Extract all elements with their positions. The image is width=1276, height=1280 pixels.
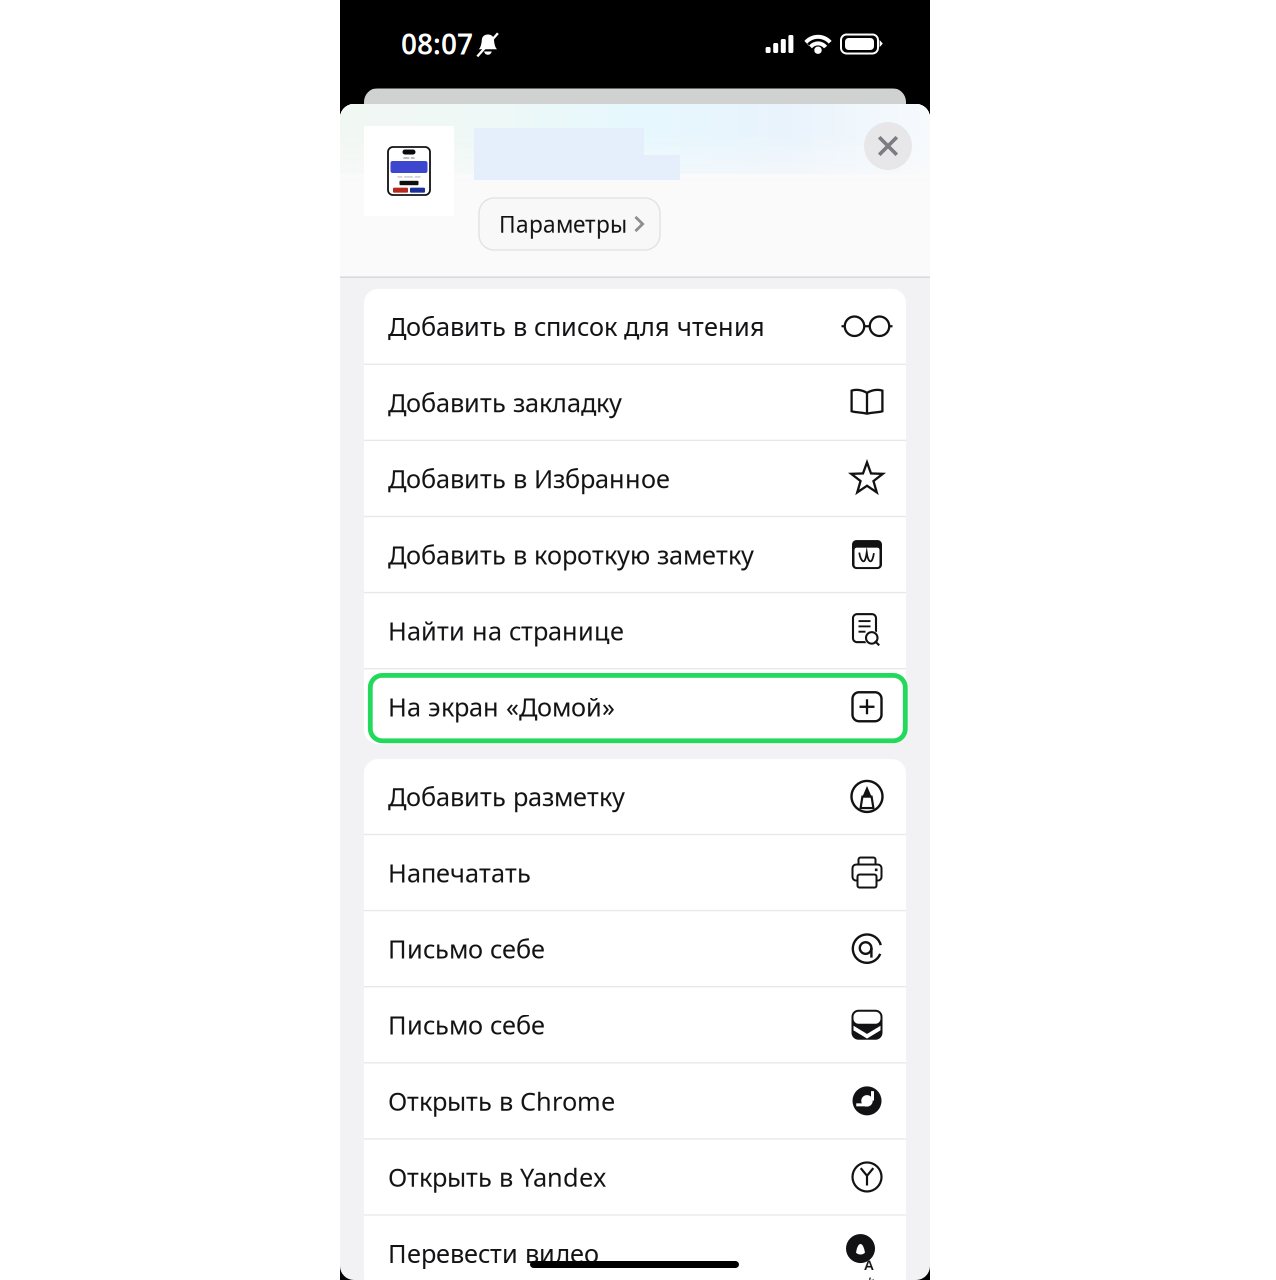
button[interactable]: Добавить закладку [364,365,906,440]
staticText: Добавить закладку [388,385,622,419]
staticText: Открыть в Yandex [388,1160,606,1194]
staticText: На экран «Домой» [388,690,615,723]
button[interactable]: Напечатать [364,835,906,910]
staticText: Письмо себе [388,932,545,965]
button[interactable]: Открыть в Chrome [364,1063,906,1138]
staticText: Добавить в Избранное [388,462,670,495]
button[interactable]: Добавить в короткую заметку [364,517,906,592]
staticText: Перевести видео [388,1236,599,1270]
staticText: Aあ [864,1255,879,1280]
button[interactable]: Перевести видео [364,1216,906,1280]
button[interactable]: Найти на странице [364,593,906,668]
staticText: 08:07 [401,25,473,62]
button[interactable]: Письмо себе [364,911,906,986]
button[interactable]: Закрыть [857,115,919,177]
staticText: Параметры [499,209,627,239]
staticText: Добавить разметку [388,780,625,813]
button[interactable]: Письмо себе [364,987,906,1062]
staticText: Добавить в список для чтения [388,309,765,343]
staticText: Найти на странице [388,614,624,647]
staticText: Открыть в Chrome [388,1084,615,1118]
button[interactable]: Параметры [479,198,660,250]
staticText: Напечатать [388,856,531,889]
button[interactable]: Добавить в список для чтения [364,289,906,364]
staticText: Письмо себе [388,1008,545,1041]
button[interactable]: На экран «Домой» [364,669,906,744]
button[interactable]: Добавить в Избранное [364,441,906,516]
button[interactable]: Добавить разметку [364,759,906,834]
button[interactable]: Открыть в Yandex [364,1140,906,1214]
staticText: Добавить в короткую заметку [388,538,754,571]
